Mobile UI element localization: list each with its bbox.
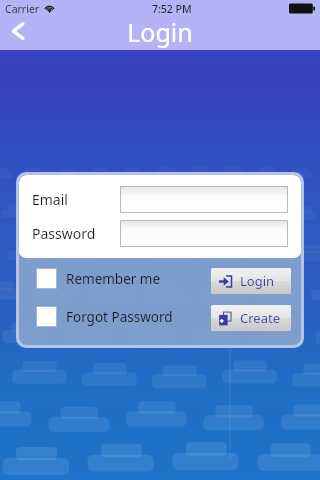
button[interactable]: Forgot Password bbox=[36, 306, 173, 327]
staticText: Email bbox=[32, 190, 120, 209]
button[interactable]: Create bbox=[211, 305, 291, 331]
button[interactable] bbox=[121, 187, 287, 212]
staticText: Create bbox=[240, 309, 280, 327]
staticText: Carrier bbox=[5, 2, 40, 16]
button[interactable] bbox=[121, 221, 287, 246]
staticText: Remember me bbox=[66, 270, 161, 288]
staticText: Forgot Password bbox=[66, 308, 173, 326]
staticText: 7:52 PM bbox=[152, 2, 192, 16]
staticText: Password bbox=[32, 224, 120, 243]
staticText: Login bbox=[0, 15, 320, 49]
button[interactable]: Back bbox=[4, 17, 34, 47]
staticText: Login bbox=[240, 272, 275, 290]
button[interactable]: Remember me bbox=[36, 268, 161, 289]
button[interactable]: Login bbox=[211, 268, 291, 294]
